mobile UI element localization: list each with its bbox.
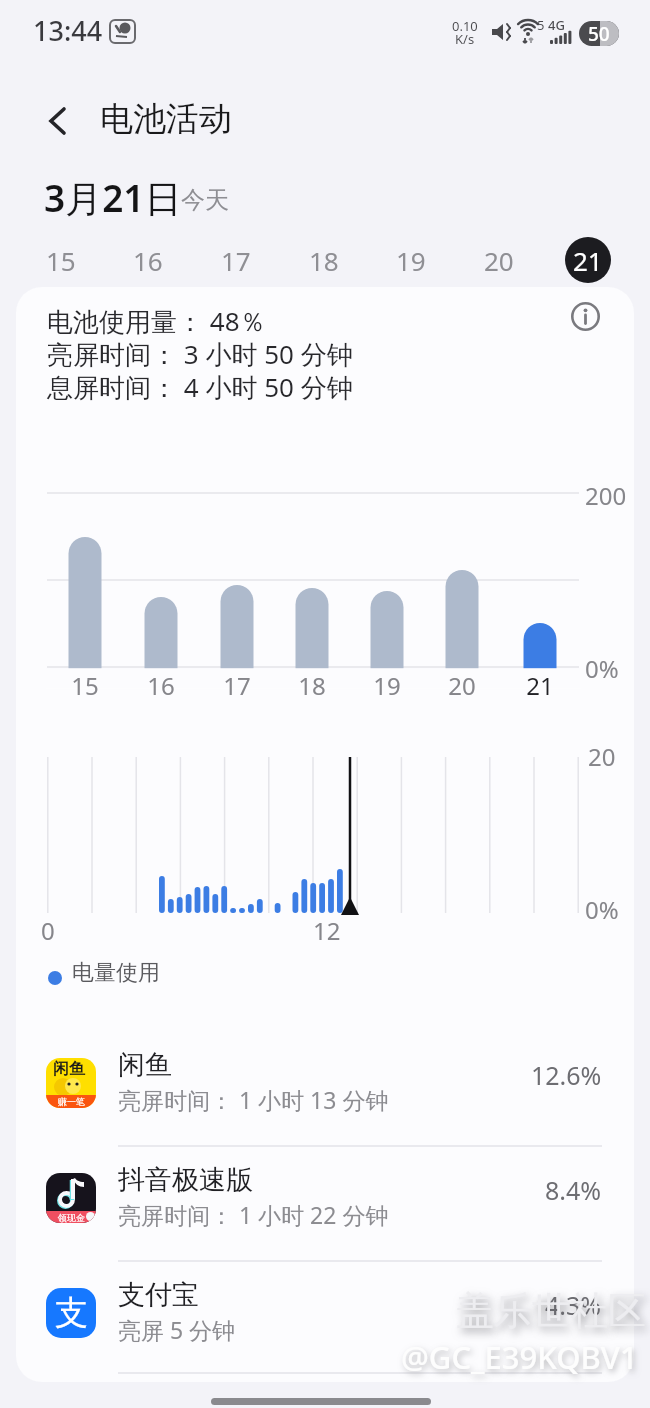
staticText: 支付宝 [118,1278,199,1312]
staticText: 亮屏 5 分钟 [118,1314,236,1345]
staticText: 20 [484,243,514,278]
staticText: 盖乐世社区 [456,1287,646,1335]
staticText: 17 [223,669,251,702]
staticText: 12.6% [531,1058,602,1092]
staticText: 21 [526,669,554,702]
staticText: 19 [396,243,426,278]
button[interactable]: 16 [125,237,171,283]
button[interactable]: 19 [388,237,434,283]
button[interactable] [571,302,600,331]
staticText: 50 [588,21,610,46]
staticText: 8.4% [545,1173,602,1207]
staticText: 15 [46,243,76,278]
button[interactable] [48,107,68,135]
staticText: 闲鱼 [53,1059,85,1079]
staticText: 16 [147,669,175,702]
button[interactable]: 闲鱼 [30,1048,620,1148]
staticText: 抖音极速版 [118,1163,253,1197]
staticText: 20 [588,740,616,773]
staticText: 21 [573,243,603,278]
button[interactable]: 领现金 [30,1163,620,1263]
staticText: 4G [548,16,565,34]
staticText: @GC_E39KQBV1 [401,1336,638,1378]
staticText: 19 [373,669,401,702]
staticText: 15 [71,669,99,702]
staticText: 0% [585,652,619,685]
staticText: 电池使用量： 48％ 亮屏时间： 3 小时 50 分钟 息屏时间： 4 小时 5… [47,303,353,404]
staticText: 赚一笔 [58,1096,85,1107]
staticText: 0% [585,893,619,926]
staticText: 18 [298,669,326,702]
button[interactable]: 17 [213,237,259,283]
staticText: 0 [41,914,55,947]
staticText: 5 [537,16,545,34]
staticText: 领现金 [58,1212,85,1223]
button[interactable]: 支 [30,1278,620,1378]
staticText: 4.3% [545,1288,602,1322]
button[interactable]: 18 [301,237,347,283]
staticText: 电量使用 [72,959,160,987]
staticText: 亮屏时间： 1 小时 13 分钟 [118,1084,389,1115]
button[interactable]: 20 [476,237,522,283]
staticText: 今天 [181,185,229,215]
button[interactable]: 21 [565,237,611,283]
staticText: 16 [133,243,163,278]
staticText: 0.10 [452,17,478,35]
staticText: 3月21日 [44,172,182,223]
staticText: 17 [221,243,251,278]
staticText: 支 [55,1292,88,1334]
staticText: 12 [313,914,341,947]
button[interactable]: 15 [38,237,84,283]
staticText: K/s [455,30,475,48]
staticText: 13:44 [33,12,103,49]
staticText: 200 [585,479,627,512]
staticText: 18 [309,243,339,278]
staticText: 20 [448,669,476,702]
staticText: 电池活动 [100,98,232,140]
staticText: 闲鱼 [118,1048,172,1082]
staticText: 亮屏时间： 1 小时 22 分钟 [118,1199,389,1230]
